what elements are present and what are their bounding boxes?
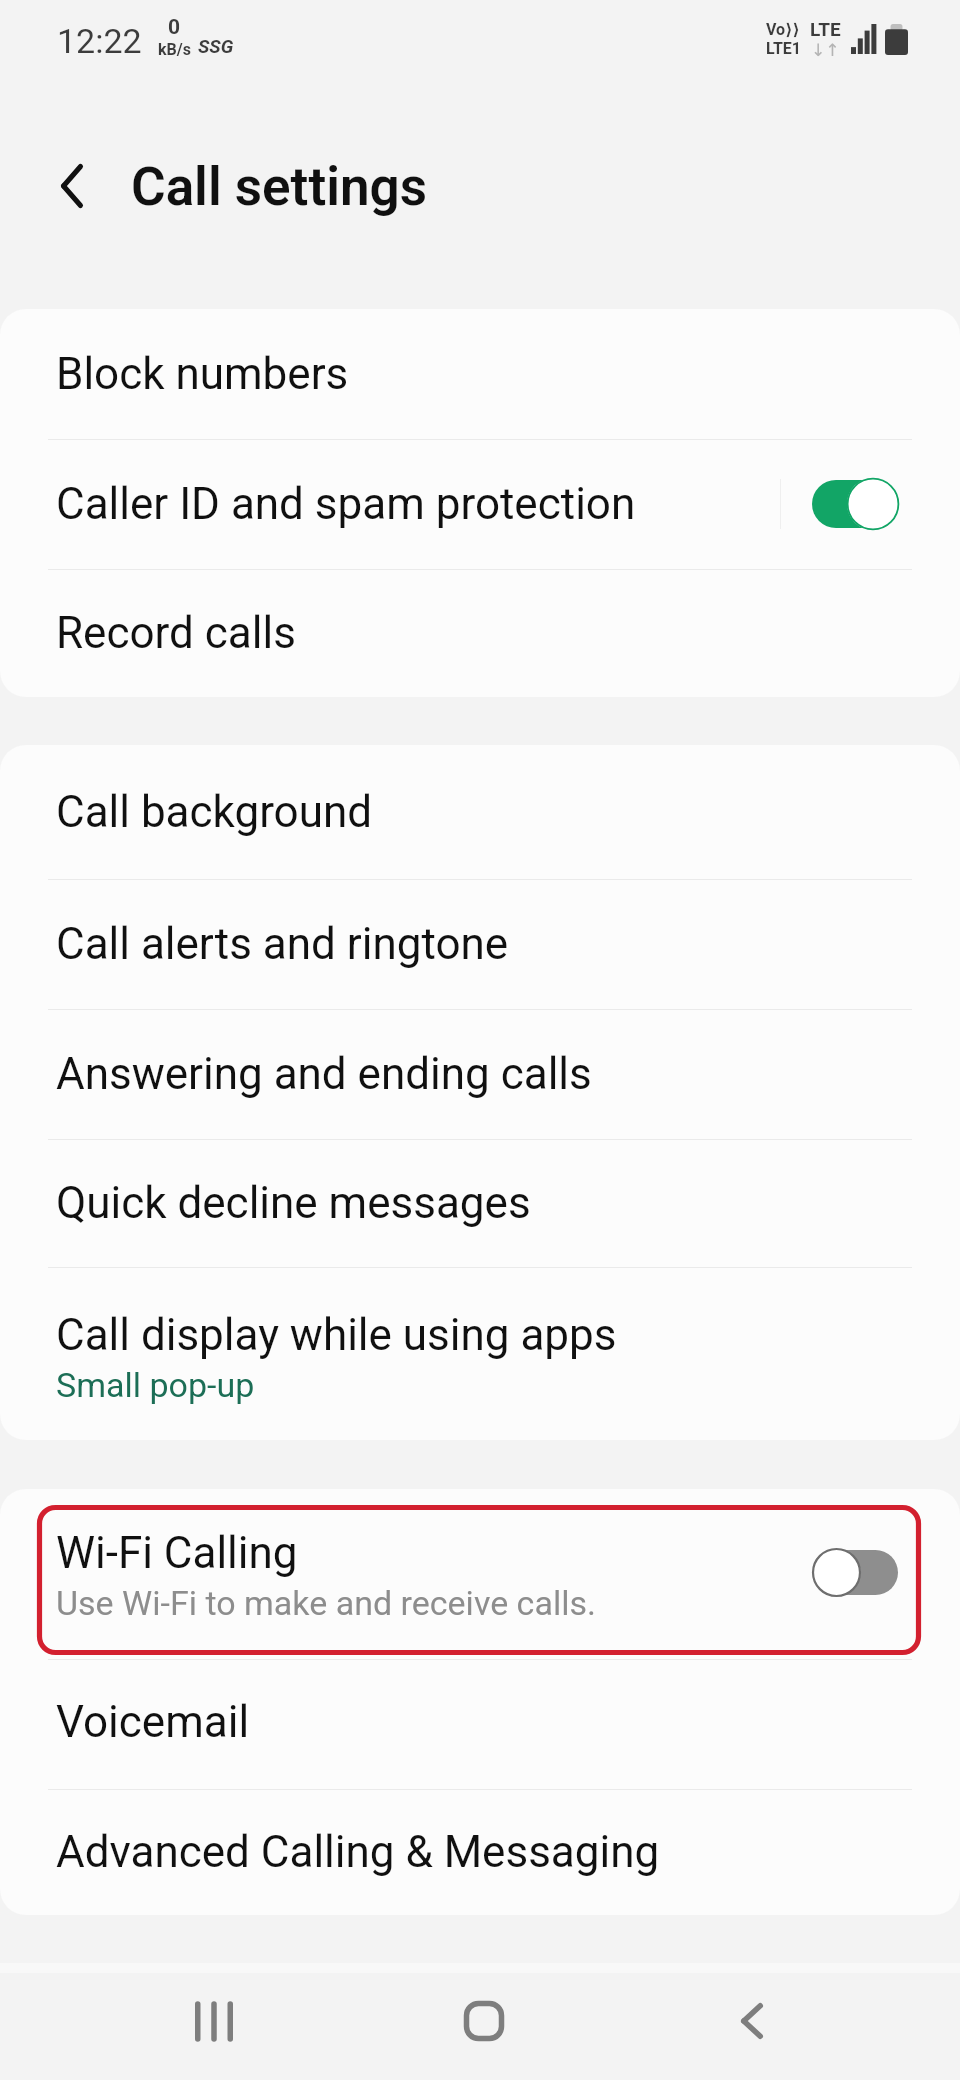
staticText: Block numbers	[56, 348, 349, 400]
staticText: kB/s	[158, 40, 191, 59]
staticText: 12:22	[57, 21, 142, 61]
staticText: Small pop-up	[56, 1365, 255, 1405]
staticText: Vo⟩⟩	[766, 20, 800, 39]
staticText: Use Wi-Fi to make and receive calls.	[56, 1583, 596, 1623]
staticText: Record calls	[56, 607, 296, 659]
button[interactable]: Call background	[0, 745, 960, 879]
button[interactable]: Answering and ending calls	[0, 1009, 960, 1139]
staticText: Voicemail	[56, 1696, 250, 1748]
button[interactable]: Caller ID and spam protection	[0, 439, 960, 569]
staticText: Wi-Fi Calling	[56, 1527, 298, 1579]
staticText: ↓↑	[811, 40, 840, 60]
button[interactable]: Voicemail	[0, 1654, 960, 1789]
button[interactable]: Block numbers	[0, 309, 960, 439]
staticText: Answering and ending calls	[56, 1048, 592, 1100]
button[interactable]: Call alerts and ringtone	[0, 879, 960, 1009]
button[interactable]: Recent apps	[164, 1971, 264, 2071]
staticText: SSG	[198, 35, 234, 57]
button[interactable]: Call display while using apps	[0, 1267, 960, 1440]
button[interactable]: Navigate up	[22, 136, 122, 236]
staticText: Call display while using apps	[56, 1309, 617, 1361]
staticText: 0	[168, 15, 181, 40]
staticText: Call settings	[131, 156, 427, 218]
button[interactable]: Wi-Fi Calling	[0, 1489, 960, 1654]
button[interactable]: Quick decline messages	[0, 1139, 960, 1267]
staticText: Call background	[56, 786, 373, 838]
staticText: Quick decline messages	[56, 1177, 531, 1229]
staticText: Call alerts and ringtone	[56, 918, 509, 970]
staticText: LTE	[810, 18, 841, 40]
staticText: Caller ID and spam protection	[56, 478, 636, 530]
button[interactable]: Wi-Fi Calling, off	[801, 1537, 909, 1607]
button[interactable]: Back	[702, 1971, 802, 2071]
button[interactable]: Caller ID and spam protection, on	[801, 469, 909, 539]
staticText: LTE1	[766, 39, 801, 58]
staticText: Advanced Calling & Messaging	[56, 1826, 660, 1878]
button[interactable]: Record calls	[0, 569, 960, 697]
button[interactable]: Advanced Calling & Messaging	[0, 1789, 960, 1915]
button[interactable]: Home	[434, 1971, 534, 2071]
